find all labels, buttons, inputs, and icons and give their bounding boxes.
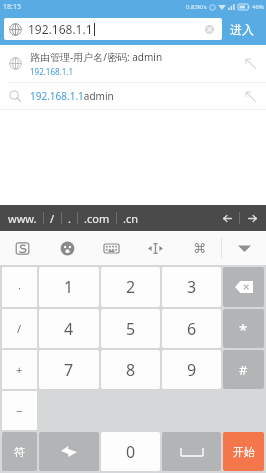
button[interactable]: 9 bbox=[162, 350, 221, 389]
button[interactable]: 路由管理-用户名/密码: admin bbox=[0, 45, 266, 82]
button[interactable]: 3 bbox=[162, 267, 221, 307]
staticText: .cn bbox=[123, 211, 139, 226]
button[interactable]: 1 bbox=[39, 267, 99, 307]
button[interactable]: .cn bbox=[123, 205, 139, 231]
button[interactable]: Hide keyboard bbox=[222, 231, 266, 265]
staticText: 192.168.1.1 bbox=[28, 21, 93, 37]
staticText: / bbox=[50, 211, 55, 226]
staticText: 路由管理-用户名/密码: admin bbox=[30, 50, 163, 64]
button[interactable]: 符 bbox=[2, 432, 37, 471]
button[interactable]: # bbox=[223, 350, 264, 389]
staticText: 9 bbox=[187, 359, 197, 381]
button[interactable]: Next bbox=[240, 205, 264, 231]
button[interactable]: 进入 bbox=[222, 13, 262, 45]
staticText: 符 bbox=[14, 445, 25, 459]
staticText: + bbox=[16, 362, 23, 377]
button[interactable]: Emoji bbox=[45, 231, 89, 265]
staticText: 46% bbox=[252, 3, 264, 11]
button[interactable]: 5 bbox=[101, 309, 160, 348]
button[interactable]: Sogou input bbox=[0, 231, 45, 265]
button[interactable]: 7 bbox=[39, 350, 99, 389]
staticText: 2 bbox=[126, 276, 136, 298]
button[interactable]: 0 bbox=[101, 432, 160, 471]
staticText: · bbox=[18, 280, 21, 295]
button[interactable]: + bbox=[2, 350, 37, 389]
button[interactable]: www. bbox=[8, 205, 37, 231]
button[interactable]: Fill in query bbox=[234, 45, 266, 82]
button[interactable]: · bbox=[2, 267, 37, 307]
staticText: − bbox=[16, 403, 23, 418]
staticText: 5 bbox=[126, 318, 136, 340]
staticText: .com bbox=[84, 211, 110, 226]
button[interactable]: 8 bbox=[101, 350, 160, 389]
button[interactable]: Return bbox=[39, 432, 99, 471]
staticText: www. bbox=[8, 211, 37, 226]
staticText: # bbox=[239, 361, 248, 379]
staticText: ⌘ bbox=[193, 241, 206, 256]
button[interactable]: 6 bbox=[162, 309, 221, 348]
staticText: 6 bbox=[187, 318, 197, 340]
staticText: 0.83K/s bbox=[186, 3, 207, 11]
staticText: 开始 bbox=[233, 445, 255, 459]
staticText: 18:15 bbox=[3, 2, 21, 12]
button[interactable]: 192.168.1.1admin bbox=[0, 83, 266, 109]
staticText: 1 bbox=[64, 276, 74, 298]
staticText: 3 bbox=[187, 276, 197, 298]
button[interactable]: Backspace bbox=[223, 267, 264, 307]
staticText: 7 bbox=[64, 359, 74, 381]
staticText: / bbox=[17, 321, 22, 336]
button[interactable]: Move cursor bbox=[133, 231, 177, 265]
button[interactable]: 192.168.1.1 bbox=[4, 18, 222, 40]
staticText: * bbox=[239, 319, 248, 339]
button[interactable]: 开始 bbox=[223, 432, 264, 471]
button[interactable]: .com bbox=[84, 205, 110, 231]
button[interactable]: Space bbox=[162, 432, 221, 471]
button[interactable]: * bbox=[223, 309, 264, 348]
button[interactable]: / bbox=[2, 309, 37, 348]
staticText: 0 bbox=[126, 441, 136, 463]
button[interactable]: Clear bbox=[201, 21, 217, 37]
staticText: . bbox=[68, 211, 71, 226]
staticText: 8 bbox=[126, 359, 136, 381]
button[interactable]: − bbox=[2, 391, 37, 430]
button[interactable]: / bbox=[50, 205, 55, 231]
button[interactable]: . bbox=[68, 205, 71, 231]
button[interactable]: Keyboard layout bbox=[89, 231, 133, 265]
button[interactable]: 4 bbox=[39, 309, 99, 348]
button[interactable]: Previous bbox=[215, 205, 239, 231]
button[interactable]: Settings bbox=[177, 231, 221, 265]
staticText: 192.168.1.1admin bbox=[30, 89, 234, 103]
button[interactable]: 2 bbox=[101, 267, 160, 307]
staticText: 4 bbox=[64, 318, 74, 340]
button[interactable]: Fill in query bbox=[234, 83, 266, 109]
staticText: 192.168.1.1 bbox=[30, 66, 74, 77]
staticText: 进入 bbox=[230, 22, 254, 37]
